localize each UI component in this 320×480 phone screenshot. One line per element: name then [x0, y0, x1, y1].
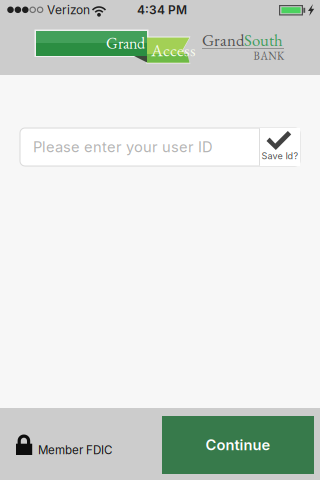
staticText: 4:34 PM: [137, 3, 187, 17]
staticText: Save Id?: [261, 150, 298, 161]
staticText: Member FDIC: [38, 443, 112, 457]
staticText: Access: [151, 39, 196, 61]
button[interactable]: Save Id?: [260, 128, 300, 166]
staticText: Grand: [106, 33, 145, 53]
staticText: South: [244, 29, 283, 51]
staticText: Grand: [202, 29, 244, 51]
staticText: BANK: [254, 49, 284, 63]
button[interactable]: Continue: [162, 416, 314, 474]
staticText: Verizon: [47, 3, 90, 17]
staticText: Please enter your user ID: [33, 138, 213, 156]
staticText: Continue: [205, 436, 270, 454]
button[interactable]: Please enter your user ID: [20, 128, 246, 166]
